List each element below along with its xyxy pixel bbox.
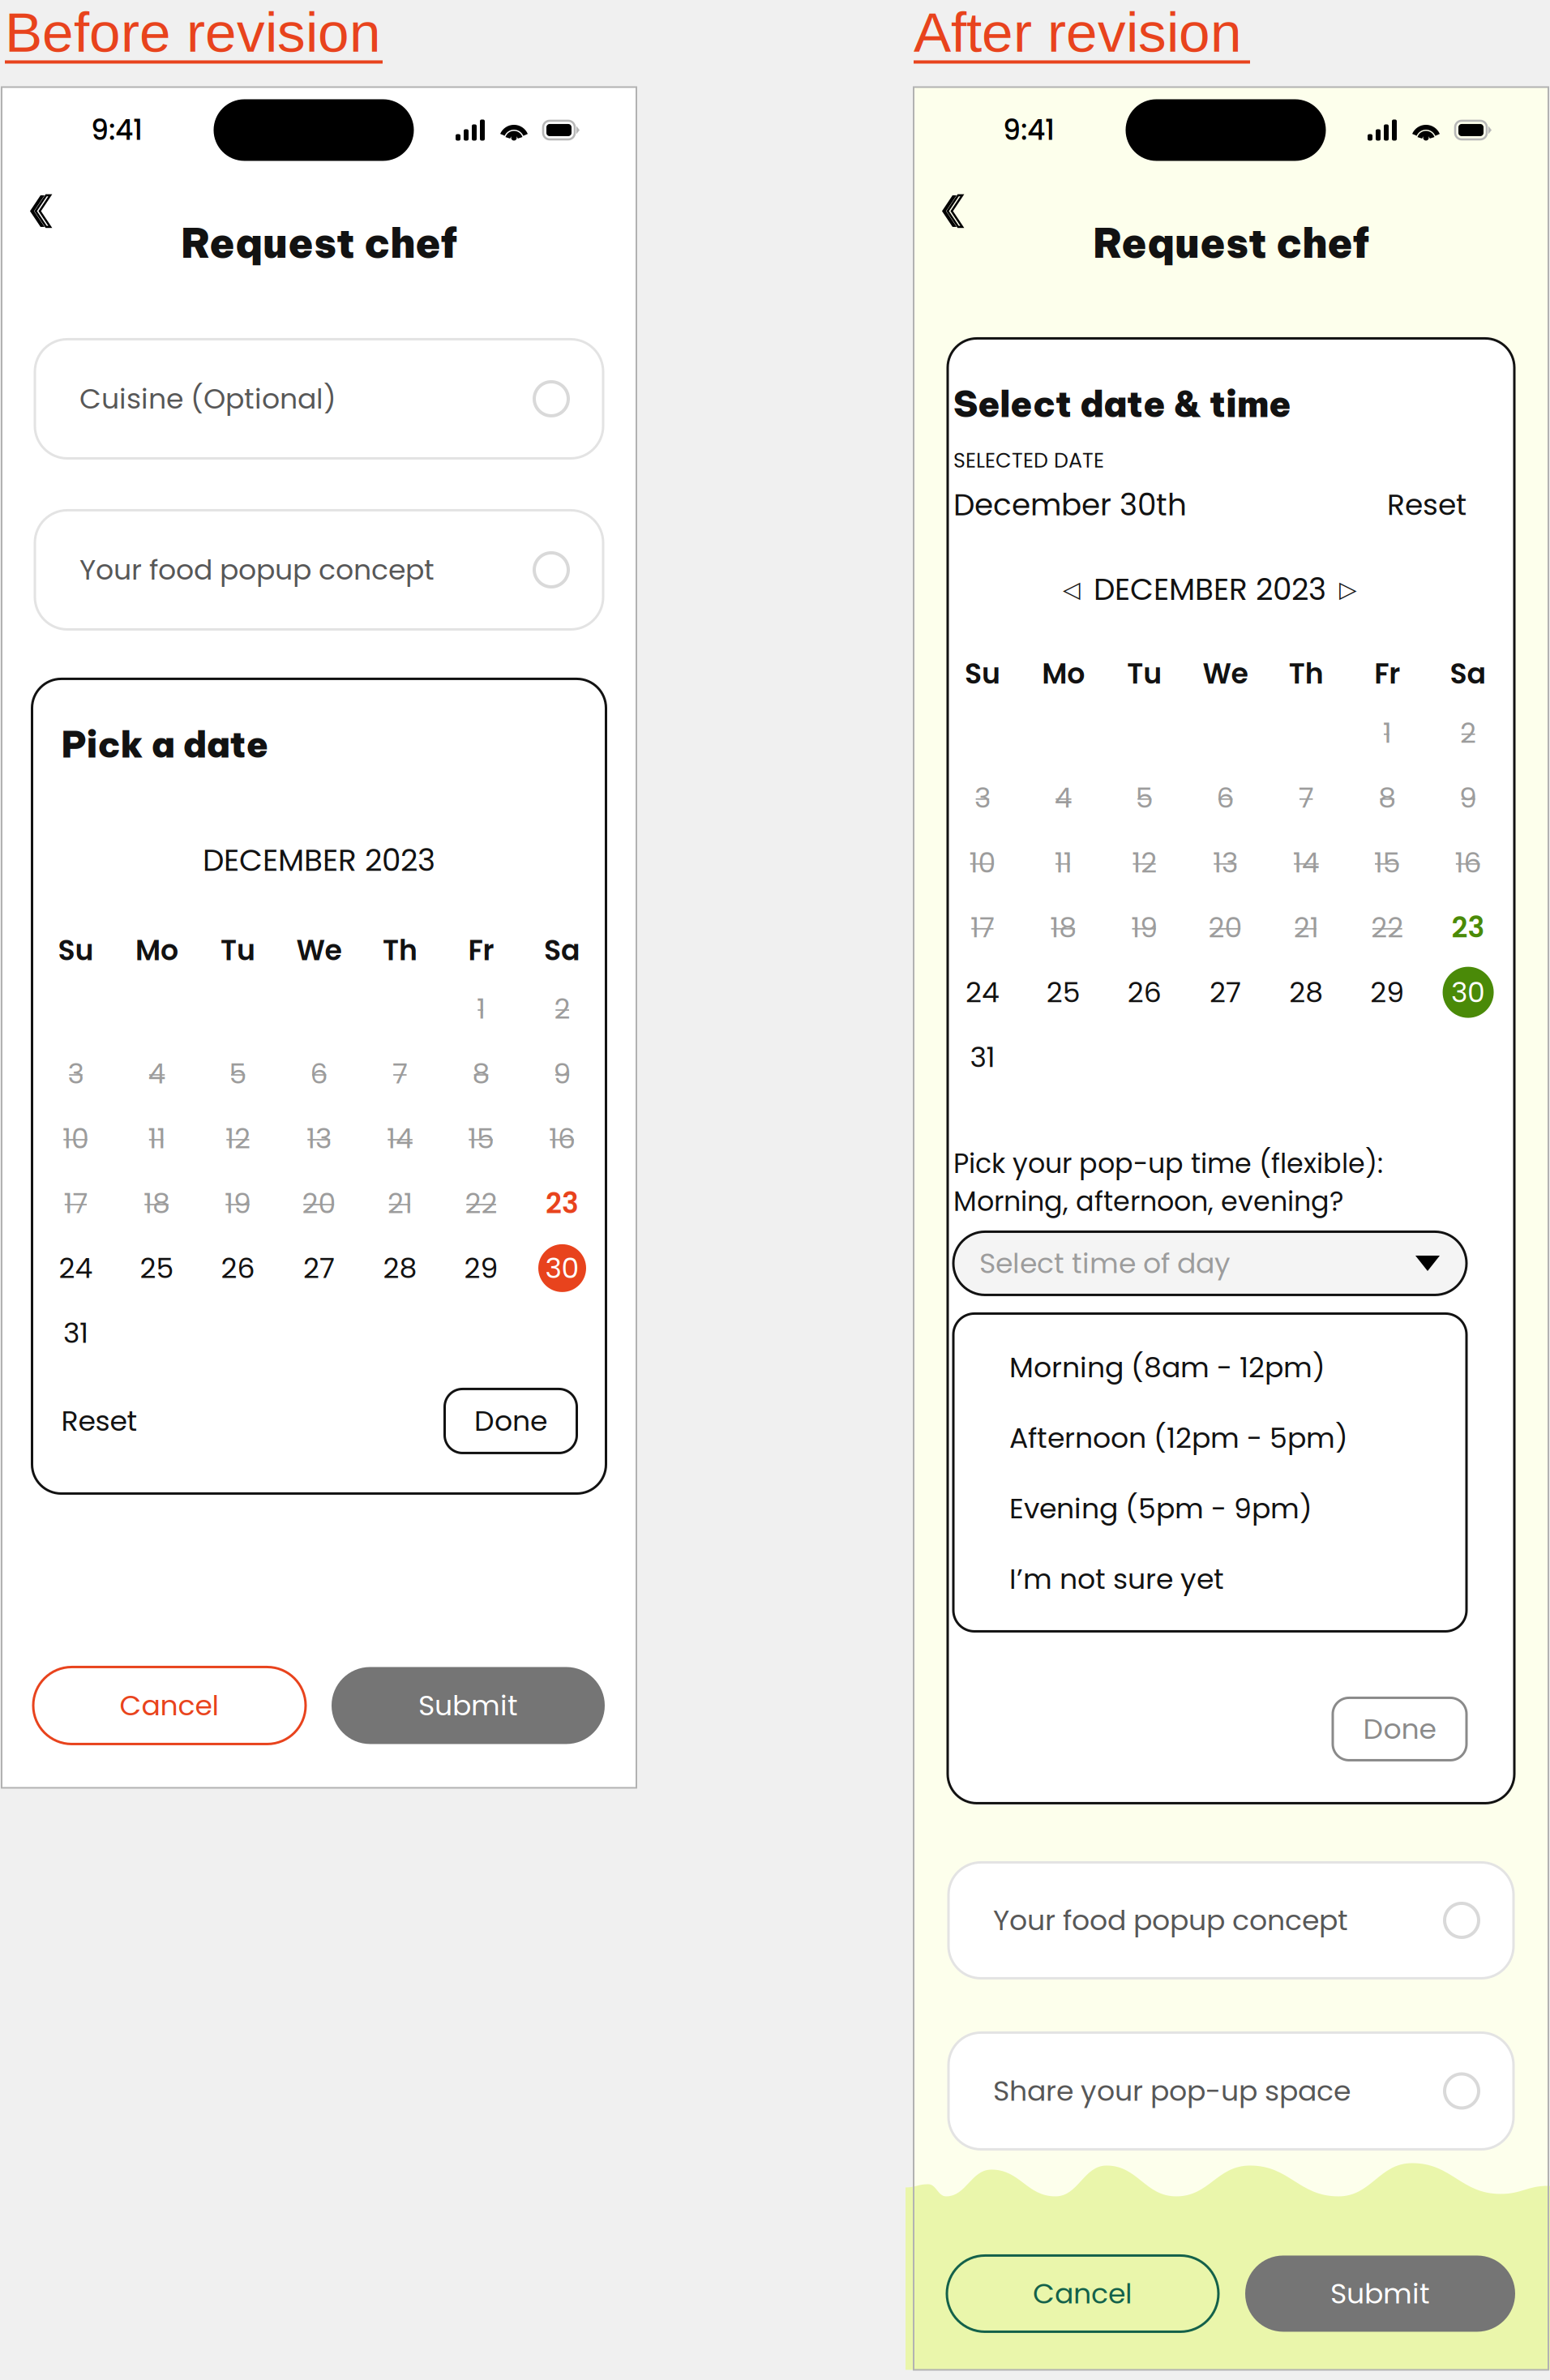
button[interactable]: Done: [445, 1389, 577, 1453]
button[interactable]: Reset: [1387, 484, 1467, 525]
staticText: 3: [68, 1054, 84, 1093]
button[interactable]: Cancel: [947, 2256, 1218, 2332]
staticText: We: [1203, 654, 1248, 693]
staticText: Done: [474, 1401, 547, 1441]
staticText: Sa: [544, 931, 580, 970]
staticText: Morning (8am - 12pm): [1009, 1348, 1325, 1387]
staticText: 7: [1299, 778, 1314, 817]
staticText: Morning, afternoon, evening?: [953, 1183, 1343, 1220]
staticText: 15: [1374, 843, 1401, 882]
staticText: 11: [1055, 843, 1072, 882]
staticText: 2: [554, 989, 570, 1028]
staticText: 13: [1213, 843, 1238, 882]
staticText: 4: [1055, 778, 1072, 817]
button[interactable]: Your food popup concept: [35, 510, 603, 629]
staticText: 13: [306, 1119, 332, 1158]
staticText: 23: [546, 1184, 579, 1223]
staticText: 21: [387, 1184, 413, 1223]
staticText: Request chef: [181, 217, 457, 269]
staticText: SELECTED DATE: [953, 446, 1104, 475]
staticText: ◁: [1063, 576, 1081, 603]
button[interactable]: Your food popup concept: [948, 1862, 1514, 1978]
staticText: DECEMBER 2023: [203, 839, 435, 881]
staticText: Cancel: [1033, 2274, 1133, 2313]
staticText: 9: [1459, 778, 1477, 817]
staticText: Reset: [61, 1401, 137, 1441]
staticText: 26: [1127, 973, 1161, 1012]
button[interactable]: I’m not sure yet: [1009, 1558, 1467, 1601]
staticText: Request chef: [1093, 217, 1369, 269]
button[interactable]: Submit: [332, 1667, 605, 1744]
staticText: 25: [140, 1248, 174, 1288]
staticText: 15: [468, 1119, 495, 1158]
staticText: Submit: [1330, 2274, 1430, 2313]
staticText: 9:41: [91, 110, 143, 150]
button[interactable]: Back: [934, 190, 970, 232]
staticText: Submit: [418, 1686, 518, 1725]
button[interactable]: Select time of day: [953, 1232, 1467, 1295]
staticText: 8: [472, 1054, 490, 1093]
staticText: 19: [1131, 908, 1158, 947]
staticText: Tu: [1127, 654, 1162, 693]
staticText: Pick a date: [61, 722, 269, 767]
staticText: Evening (5pm - 9pm): [1009, 1489, 1312, 1528]
staticText: I’m not sure yet: [1009, 1559, 1224, 1599]
staticText: Th: [383, 931, 417, 970]
staticText: 22: [1371, 908, 1403, 947]
button[interactable]: Back: [22, 190, 58, 232]
button[interactable]: Cancel: [33, 1667, 306, 1744]
staticText: 19: [225, 1184, 251, 1223]
staticText: 3: [974, 778, 991, 817]
staticText: 30: [1451, 973, 1485, 1012]
button[interactable]: Reset: [61, 1401, 137, 1441]
button[interactable]: Done: [1333, 1698, 1467, 1760]
staticText: 29: [464, 1248, 498, 1288]
staticText: Tu: [221, 931, 255, 970]
staticText: Mo: [1042, 654, 1085, 693]
staticText: 17: [64, 1184, 88, 1223]
staticText: 5: [1135, 778, 1153, 817]
staticText: 17: [970, 908, 995, 947]
staticText: Your food popup concept: [79, 550, 435, 589]
staticText: 16: [1455, 843, 1482, 882]
staticText: Select time of day: [979, 1244, 1231, 1283]
staticText: Afternoon (12pm - 5pm): [1009, 1418, 1348, 1458]
staticText: 27: [1210, 973, 1241, 1012]
staticText: 18: [1050, 908, 1077, 947]
button[interactable]: Morning (8am - 12pm): [1009, 1346, 1467, 1389]
staticText: Before revision: [5, 1, 381, 64]
staticText: 22: [465, 1184, 497, 1223]
staticText: 20: [1208, 908, 1242, 947]
staticText: Sa: [1450, 654, 1486, 693]
button[interactable]: Cuisine (Optional): [35, 339, 603, 458]
staticText: Share your pop-up space: [993, 2071, 1351, 2111]
staticText: Cuisine (Optional): [79, 379, 336, 418]
staticText: Cancel: [120, 1686, 219, 1725]
staticText: 23: [1452, 908, 1485, 947]
staticText: 1: [1383, 713, 1392, 753]
staticText: 1: [477, 989, 486, 1028]
button[interactable]: Submit: [1245, 2256, 1515, 2332]
staticText: Su: [965, 654, 1000, 693]
staticText: 5: [229, 1054, 247, 1093]
button[interactable]: Evening (5pm - 9pm): [1009, 1487, 1467, 1530]
staticText: 2: [1460, 713, 1476, 753]
staticText: 27: [303, 1248, 335, 1288]
staticText: 7: [392, 1054, 408, 1093]
staticText: Pick your pop-up time (flexible):: [953, 1145, 1383, 1183]
staticText: ▷: [1339, 576, 1357, 603]
staticText: 6: [310, 1054, 328, 1093]
staticText: 28: [1289, 973, 1323, 1012]
staticText: 12: [1132, 843, 1157, 882]
staticText: December 30th: [953, 484, 1187, 526]
staticText: Fr: [1374, 654, 1400, 693]
staticText: 14: [387, 1119, 413, 1158]
staticText: 9:41: [1003, 110, 1055, 150]
staticText: 4: [148, 1054, 166, 1093]
staticText: 10: [62, 1119, 89, 1158]
button[interactable]: Afternoon (12pm - 5pm): [1009, 1416, 1467, 1459]
staticText: Mo: [135, 931, 178, 970]
button[interactable]: Share your pop-up space: [948, 2033, 1514, 2149]
staticText: 31: [63, 1313, 88, 1353]
staticText: 6: [1216, 778, 1234, 817]
